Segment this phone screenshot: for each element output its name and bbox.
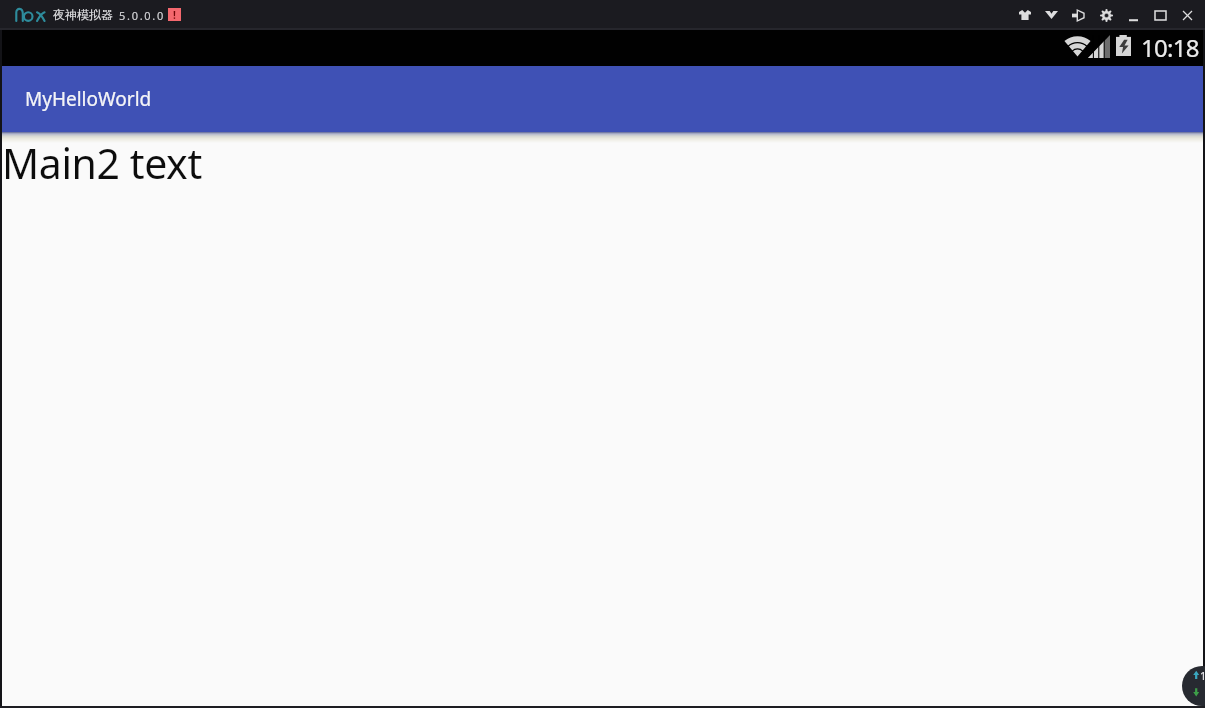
button[interactable]: Settings [1093, 2, 1119, 28]
staticText: ! [173, 8, 176, 21]
staticText: Main2 text [2, 135, 202, 191]
staticText: 夜神模拟器 [53, 7, 113, 22]
button[interactable]: Warning [168, 8, 181, 21]
button[interactable]: Network speed [1182, 666, 1205, 706]
staticText: 10:18 [1141, 31, 1199, 64]
button[interactable]: Close [1174, 2, 1200, 28]
button[interactable]: Skin [1012, 2, 1038, 28]
staticText: 5.0.0.0 [119, 8, 165, 23]
staticText: 1 [1200, 668, 1205, 683]
button[interactable]: Minimize [1120, 5, 1146, 31]
staticText: MyHelloWorld [25, 86, 152, 112]
button[interactable]: Volume [1065, 2, 1091, 28]
button[interactable]: Collapse [1038, 2, 1064, 28]
button[interactable]: Maximize [1147, 2, 1173, 28]
